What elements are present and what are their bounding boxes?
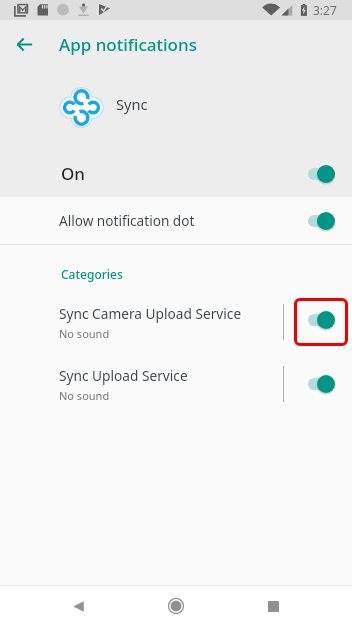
button[interactable]: Back — [0, 20, 48, 68]
staticText: Sync — [116, 94, 148, 114]
button[interactable]: Back — [54, 586, 102, 626]
staticText: No sound — [59, 326, 110, 341]
button[interactable]: On — [0, 140, 352, 197]
staticText: On — [61, 162, 85, 185]
staticText: No sound — [59, 388, 110, 403]
staticText: Sync Upload Service — [59, 366, 188, 385]
button[interactable]: Sync Upload Service — [0, 353, 352, 415]
staticText: Categories — [61, 266, 123, 282]
button[interactable]: Sync Camera Upload Service — [0, 291, 352, 353]
button[interactable]: Allow notification dot — [0, 197, 352, 244]
staticText: App notifications — [59, 33, 197, 56]
staticText: Sync Camera Upload Service — [59, 304, 242, 323]
staticText: 3:27 — [313, 2, 337, 18]
staticText: Allow notification dot — [59, 211, 195, 230]
button[interactable]: Home — [152, 586, 200, 626]
button[interactable]: Recent apps — [249, 586, 297, 626]
